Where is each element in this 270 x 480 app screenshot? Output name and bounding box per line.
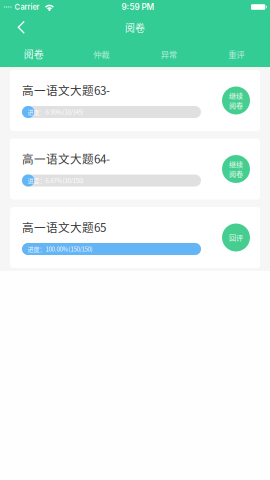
staticText: 9:59 PM — [121, 2, 154, 12]
button[interactable]: 回评 — [222, 223, 250, 251]
staticText: 继续 — [229, 159, 243, 169]
staticText: 阅卷 — [24, 47, 44, 61]
staticText: 阅卷 — [229, 169, 243, 179]
staticText: 重评 — [228, 48, 244, 60]
staticText: Carrier — [14, 2, 39, 11]
staticText: 进度：6.90%(10/145) — [27, 108, 83, 116]
button[interactable]: 异常 — [135, 40, 202, 67]
staticText: 回评 — [229, 232, 243, 243]
staticText: 阅卷 — [229, 100, 243, 110]
staticText: 继续 — [229, 91, 243, 101]
button[interactable]: 阅卷 — [0, 40, 67, 67]
staticText: 异常 — [161, 48, 177, 60]
button[interactable]: Back — [0, 16, 40, 38]
staticText: 高一语文大题65 — [22, 219, 106, 235]
staticText: 阅卷 — [125, 20, 145, 35]
staticText: 高一语文大题64- — [22, 150, 110, 167]
staticText: 高一语文大题63- — [22, 82, 110, 98]
button[interactable]: 继续阅卷 — [222, 86, 250, 114]
button[interactable]: 仲裁 — [67, 40, 135, 67]
button[interactable]: 重评 — [202, 40, 270, 67]
staticText: 进度：6.67%(10/150) — [27, 176, 83, 185]
button[interactable]: 继续阅卷 — [222, 155, 250, 183]
staticText: 仲裁 — [93, 48, 109, 60]
staticText: 进度：100.00%(150/150) — [27, 245, 92, 253]
